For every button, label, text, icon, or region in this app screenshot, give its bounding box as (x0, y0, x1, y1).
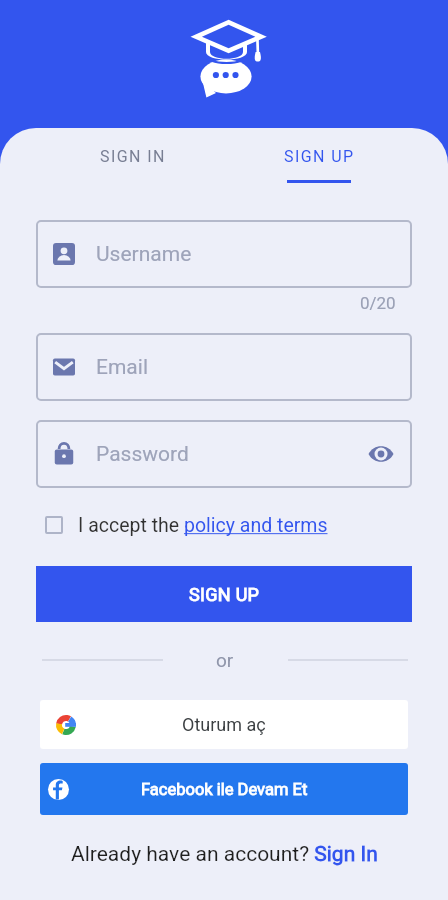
staticText: Password (96, 442, 189, 467)
other: Accept policy and terms (45, 516, 63, 534)
button[interactable]: Password (36, 420, 412, 488)
other: Show password (368, 441, 394, 467)
button[interactable]: SIGN UP (36, 566, 412, 622)
other: Sign in with Google (56, 715, 76, 735)
staticText: I accept the policy and terms (78, 514, 328, 537)
other: App logo (194, 12, 266, 98)
button[interactable]: Email (36, 333, 412, 401)
staticText: Facebook ile Devam Et (141, 780, 308, 799)
button[interactable]: Facebook ile Devam Et (40, 763, 408, 815)
other: Continue with Facebook (48, 779, 69, 800)
button[interactable]: SIGN UP (254, 128, 385, 184)
staticText: or (216, 649, 234, 671)
staticText: Username (96, 242, 192, 267)
staticText: 0/20 (360, 293, 396, 313)
button[interactable]: Accept policy and terms (45, 509, 328, 541)
staticText: Email (96, 355, 148, 380)
button[interactable]: SIGN IN (67, 128, 198, 184)
staticText: SIGN UP (189, 584, 260, 605)
staticText: Oturum aç (182, 714, 266, 735)
button[interactable]: Username (36, 220, 412, 288)
button[interactable]: Already have an account? Sign In (71, 842, 378, 867)
staticText: SIGN UP (284, 147, 355, 166)
button[interactable]: Oturum aç (40, 700, 408, 749)
staticText: SIGN IN (100, 147, 166, 166)
